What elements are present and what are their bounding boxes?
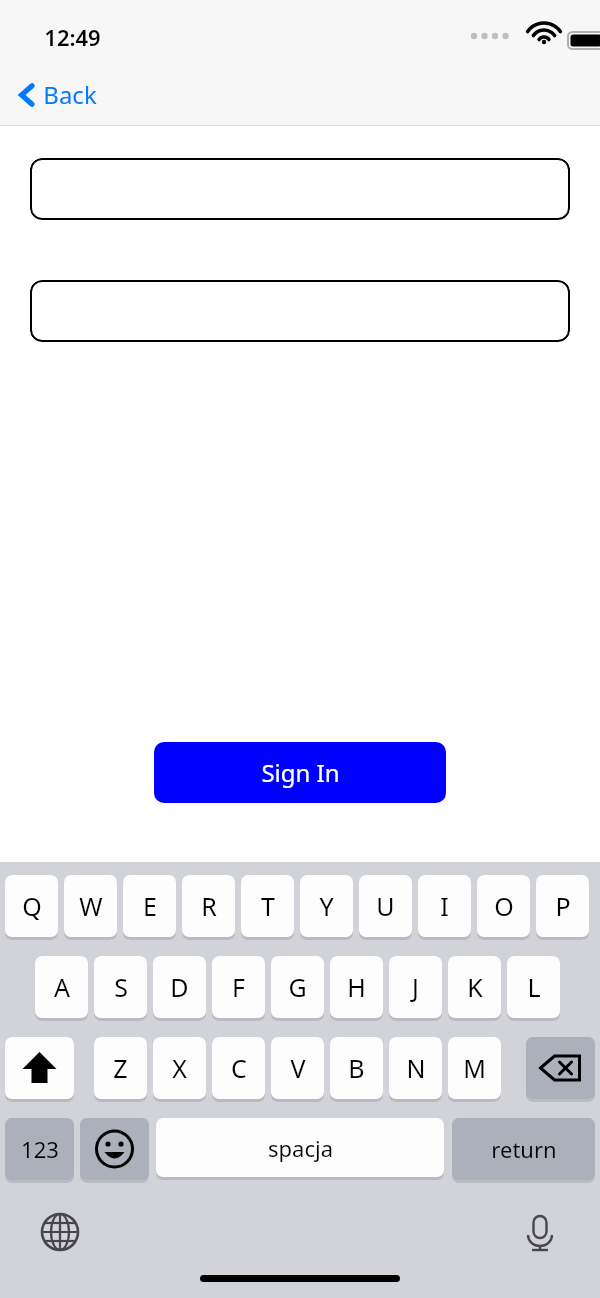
button[interactable]: Change keyboard language	[32, 1204, 88, 1260]
button[interactable]: B	[330, 1037, 383, 1099]
staticText: 12:49	[44, 22, 101, 52]
staticText: W	[79, 889, 103, 923]
staticText: K	[467, 970, 483, 1004]
button[interactable]: S	[94, 956, 147, 1018]
staticText: I	[440, 889, 449, 923]
button[interactable]: I	[418, 875, 471, 937]
staticText: 123	[21, 1134, 59, 1164]
staticText: F	[232, 970, 245, 1004]
button[interactable]: N	[389, 1037, 442, 1099]
button[interactable]: T	[241, 875, 294, 937]
staticText: T	[261, 889, 275, 923]
staticText: Z	[113, 1051, 128, 1085]
staticText: C	[231, 1051, 247, 1085]
button[interactable]: return	[452, 1118, 595, 1180]
button[interactable]: X	[153, 1037, 206, 1099]
button[interactable]: D	[153, 956, 206, 1018]
staticText: D	[170, 970, 189, 1004]
staticText: Back	[43, 78, 97, 111]
staticText: U	[376, 889, 395, 923]
button[interactable]: F	[212, 956, 265, 1018]
staticText: J	[412, 970, 419, 1004]
staticText: S	[114, 970, 128, 1004]
staticText: return	[491, 1134, 557, 1164]
button[interactable]: O	[477, 875, 530, 937]
staticText: Q	[22, 889, 42, 923]
button[interactable]: spacja	[156, 1118, 444, 1177]
button[interactable]: G	[271, 956, 324, 1018]
staticText: H	[347, 970, 366, 1004]
staticText: E	[143, 889, 157, 923]
button[interactable]: U	[359, 875, 412, 937]
staticText: X	[172, 1051, 187, 1085]
staticText: R	[201, 889, 217, 923]
button[interactable]: Password field	[30, 280, 570, 342]
button[interactable]: 123	[5, 1118, 74, 1180]
button[interactable]: M	[448, 1037, 501, 1099]
staticText: A	[54, 970, 70, 1004]
staticText: G	[288, 970, 307, 1004]
button[interactable]: Dictation	[512, 1204, 568, 1260]
button[interactable]: Back	[14, 72, 101, 117]
button[interactable]: L	[507, 956, 560, 1018]
button[interactable]: P	[536, 875, 589, 937]
staticText: B	[348, 1051, 365, 1085]
button[interactable]: V	[271, 1037, 324, 1099]
button[interactable]: Z	[94, 1037, 147, 1099]
button[interactable]: K	[448, 956, 501, 1018]
staticText: V	[290, 1051, 306, 1085]
staticText: Y	[319, 889, 334, 923]
button[interactable]: Backspace	[526, 1037, 595, 1099]
button[interactable]: H	[330, 956, 383, 1018]
staticText: O	[494, 889, 514, 923]
staticText: P	[555, 889, 571, 923]
button[interactable]: Emoji	[80, 1118, 149, 1180]
button[interactable]: Shift	[5, 1037, 74, 1099]
staticText: spacja	[268, 1133, 333, 1163]
button[interactable]: R	[182, 875, 235, 937]
button[interactable]: W	[64, 875, 117, 937]
staticText: L	[527, 970, 541, 1004]
button[interactable]: Email field	[30, 158, 570, 220]
button[interactable]: Q	[5, 875, 58, 937]
button[interactable]: J	[389, 956, 442, 1018]
button[interactable]: C	[212, 1037, 265, 1099]
staticText: N	[406, 1051, 426, 1085]
button[interactable]: Sign In	[154, 742, 446, 803]
staticText: M	[463, 1051, 486, 1085]
button[interactable]: E	[123, 875, 176, 937]
button[interactable]: Y	[300, 875, 353, 937]
button[interactable]: A	[35, 956, 88, 1018]
staticText: Sign In	[261, 756, 340, 789]
